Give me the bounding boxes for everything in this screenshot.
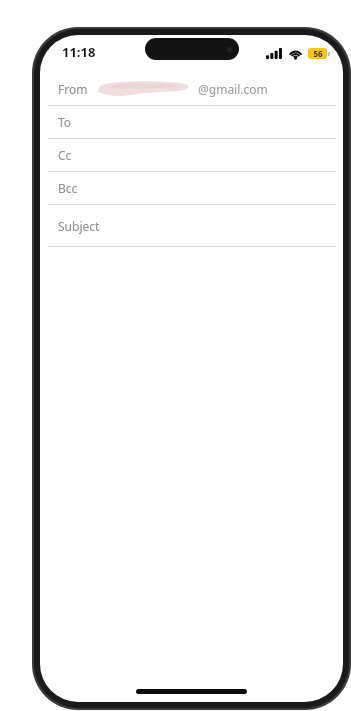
button[interactable]: Subject <box>40 205 343 247</box>
other: Battery 56 percent <box>308 48 330 59</box>
button[interactable] <box>40 247 343 702</box>
staticText: Cc <box>58 147 72 163</box>
button[interactable]: From <box>40 73 343 106</box>
other: Wi-Fi <box>288 48 303 59</box>
staticText: 11:18 <box>62 43 96 61</box>
staticText: 56 <box>313 48 323 59</box>
button[interactable]: Bcc <box>40 172 343 205</box>
staticText: From <box>58 81 88 97</box>
staticText: @gmail.com <box>198 81 268 97</box>
staticText: Subject <box>58 218 100 234</box>
button[interactable]: To <box>40 106 343 139</box>
button[interactable]: Cc <box>40 139 343 172</box>
staticText: Bcc <box>58 180 78 196</box>
other: Cellular signal <box>266 48 283 59</box>
staticText: To <box>58 114 72 130</box>
